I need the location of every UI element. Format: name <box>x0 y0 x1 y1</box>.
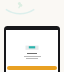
button[interactable] <box>7 66 57 70</box>
